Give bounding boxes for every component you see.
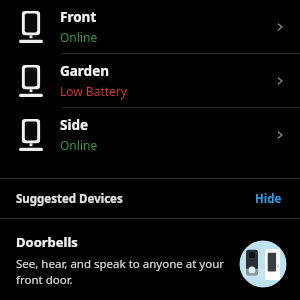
other: Doorbell illustration bbox=[238, 239, 288, 289]
other: Camera device bbox=[18, 119, 44, 151]
staticText: Online bbox=[60, 29, 98, 45]
staticText: Low Battery bbox=[60, 83, 127, 99]
staticText: Front bbox=[60, 8, 97, 26]
button[interactable]: Camera device bbox=[0, 54, 300, 107]
staticText: Suggested Devices bbox=[16, 191, 123, 207]
button[interactable]: Suggested Devices bbox=[0, 179, 300, 218]
button[interactable]: Camera device bbox=[0, 108, 300, 161]
staticText: Doorbells bbox=[16, 233, 78, 251]
staticText: Hide bbox=[255, 191, 282, 207]
staticText: Garden bbox=[60, 62, 109, 80]
staticText: Side bbox=[60, 116, 89, 134]
button[interactable]: Camera device bbox=[0, 0, 300, 53]
staticText: See, hear, and speak to anyone at your f… bbox=[16, 256, 232, 287]
other: Camera device bbox=[18, 11, 44, 43]
button[interactable]: Doorbells bbox=[0, 219, 300, 300]
staticText: Online bbox=[60, 137, 98, 153]
other: Camera device bbox=[18, 65, 44, 97]
button[interactable]: Hide bbox=[253, 187, 284, 211]
